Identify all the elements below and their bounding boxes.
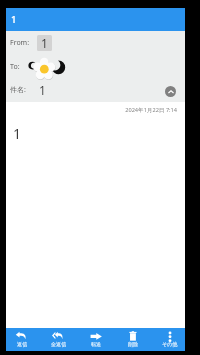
staticText: 1 xyxy=(11,13,17,26)
staticText: その他 xyxy=(162,341,178,347)
staticText: 返信 xyxy=(17,341,27,347)
staticText: 1 xyxy=(13,124,22,143)
staticText: 件名: xyxy=(10,85,26,95)
staticText: 転送 xyxy=(91,341,101,347)
button[interactable]: Reply all xyxy=(40,328,77,351)
staticText: 1 xyxy=(39,82,46,98)
button[interactable]: 1 xyxy=(6,8,185,31)
staticText: To: xyxy=(10,62,20,72)
staticText: 全返信 xyxy=(51,341,66,347)
staticText: 1 xyxy=(41,35,48,51)
staticText: From: xyxy=(10,38,30,48)
button[interactable]: Collapse header xyxy=(165,86,176,97)
staticText: 2024年1月22日 7:14 xyxy=(6,106,177,114)
staticText: 削除 xyxy=(128,341,138,347)
button[interactable]: 1 xyxy=(37,35,52,51)
button[interactable]: Delete xyxy=(114,328,151,351)
button[interactable]: More xyxy=(151,328,188,351)
button[interactable]: Forward xyxy=(77,328,114,351)
button[interactable]: Reply xyxy=(3,328,40,351)
